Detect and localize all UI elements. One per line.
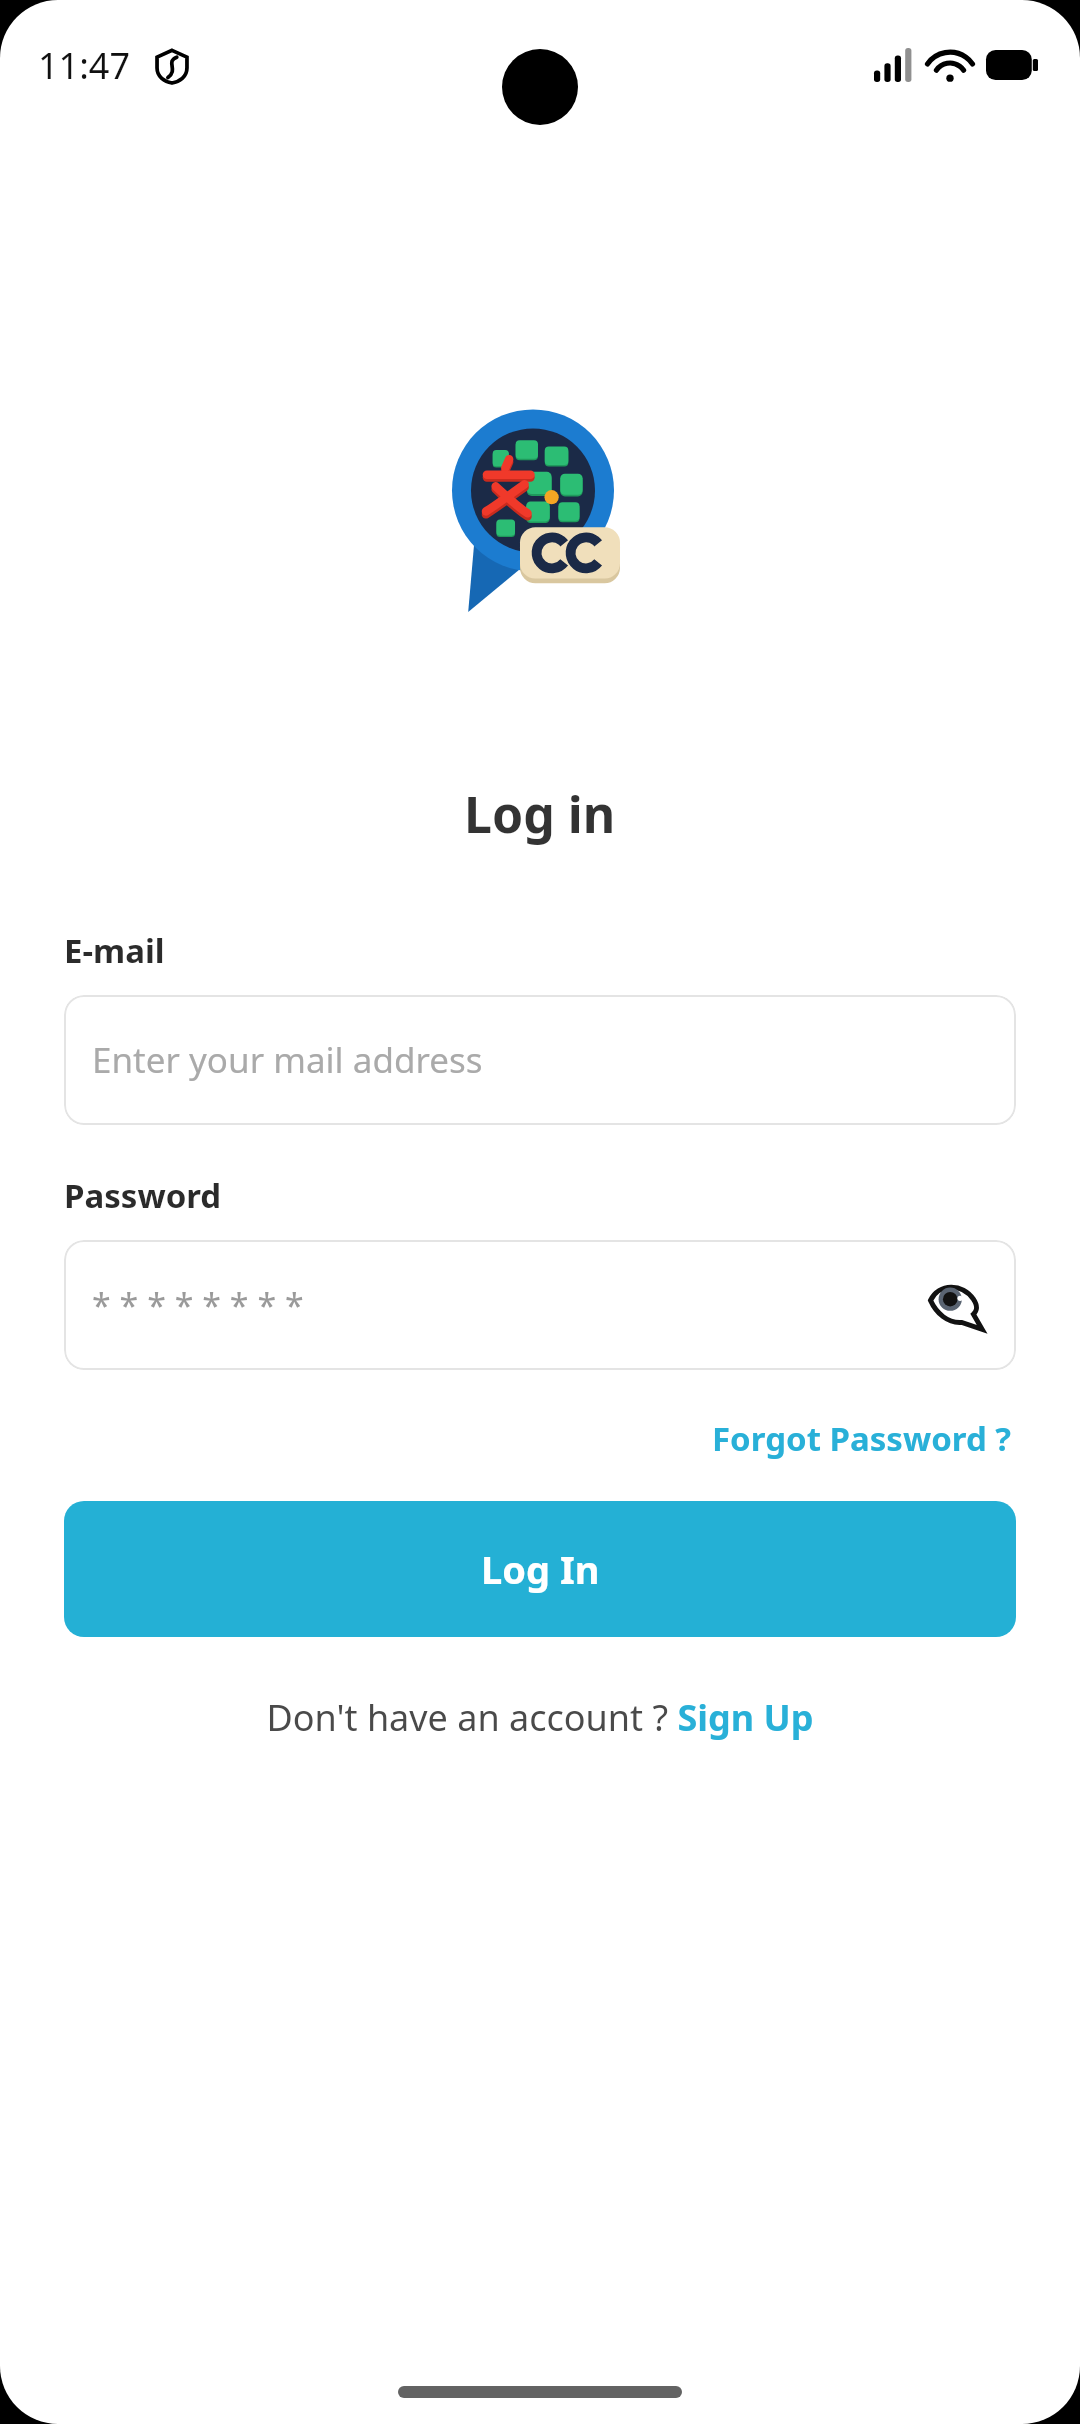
staticText: Log in	[464, 780, 616, 848]
staticText: Forgot Password ?	[712, 1416, 1012, 1461]
button[interactable]: Enter your mail address	[64, 995, 1016, 1125]
button[interactable]: Show password	[924, 1273, 988, 1337]
button[interactable]: * * * * * * * *	[64, 1240, 1016, 1370]
staticText: * * * * * * * *	[92, 1282, 304, 1328]
button[interactable]: Forgot Password ?	[708, 1412, 1016, 1465]
staticText: Enter your mail address	[92, 1036, 483, 1084]
staticText: 11:47	[38, 41, 131, 90]
button[interactable]: Don't have an account ? Sign Up	[64, 1693, 1016, 1742]
staticText: Password	[64, 1173, 222, 1218]
staticText: Don't have an account ? Sign Up	[266, 1693, 814, 1742]
staticText: Log In	[481, 1543, 600, 1595]
button[interactable]: Log In	[64, 1501, 1016, 1637]
staticText: E-mail	[64, 928, 165, 973]
